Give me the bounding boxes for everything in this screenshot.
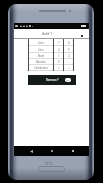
staticText: 1 bbox=[58, 54, 60, 58]
staticText: 4 bbox=[58, 48, 60, 52]
button[interactable]: . bbox=[64, 59, 73, 65]
button[interactable]: Litre bbox=[29, 46, 53, 53]
staticText: Litre bbox=[38, 48, 44, 52]
button[interactable]: = bbox=[54, 65, 63, 71]
staticText: Litre bbox=[38, 41, 44, 45]
staticText: . bbox=[68, 60, 69, 64]
button[interactable]: 7 bbox=[54, 39, 63, 46]
staticText: 0 bbox=[58, 60, 60, 64]
staticText: 8 bbox=[68, 41, 70, 45]
button[interactable]: 8 bbox=[64, 39, 73, 46]
staticText: htc bbox=[45, 159, 54, 165]
button[interactable]: Banana bbox=[29, 59, 53, 65]
button[interactable]: Home bbox=[47, 146, 57, 156]
button[interactable]: Litre bbox=[29, 39, 53, 46]
button[interactable]: + bbox=[64, 65, 73, 71]
staticText: Banana bbox=[36, 60, 46, 64]
staticText: = bbox=[58, 66, 60, 70]
button[interactable]: 0 bbox=[54, 59, 63, 65]
staticText: Remove ? bbox=[46, 78, 59, 82]
button[interactable]: 1 bbox=[54, 53, 63, 59]
button[interactable]: 5 bbox=[64, 46, 73, 53]
staticText: 2 bbox=[68, 54, 70, 58]
staticText: 5 bbox=[68, 48, 70, 52]
button[interactable]: Combinare bbox=[29, 65, 53, 71]
button[interactable]: 4 bbox=[54, 46, 63, 53]
staticText: 7 bbox=[58, 41, 60, 45]
button[interactable]: Note bbox=[29, 53, 53, 59]
staticText: Add ? bbox=[42, 31, 53, 36]
staticText: Combinare bbox=[34, 66, 48, 70]
staticText: Note bbox=[38, 54, 45, 58]
button[interactable]: Recent apps bbox=[68, 146, 78, 156]
button[interactable]: 2 bbox=[64, 53, 73, 59]
button[interactable]: OK bbox=[65, 78, 71, 82]
button[interactable]: Back bbox=[26, 146, 36, 156]
staticText: + bbox=[68, 66, 70, 70]
staticText: OK bbox=[66, 79, 70, 82]
